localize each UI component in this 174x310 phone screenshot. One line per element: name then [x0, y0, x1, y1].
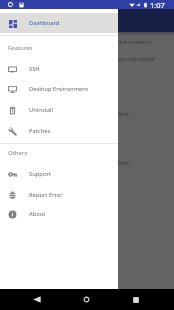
button[interactable]: SSH — [0, 59, 118, 79]
button[interactable]: Support — [0, 164, 118, 184]
button[interactable]: Desktop Environment — [0, 79, 118, 99]
staticText: SSH — [29, 65, 40, 73]
button[interactable]: Report Error — [0, 185, 118, 205]
staticText: Uninstall — [29, 106, 54, 114]
button[interactable]: Dashboard — [0, 13, 118, 33]
button[interactable]: Patches — [0, 121, 118, 141]
button[interactable]: About — [0, 204, 118, 224]
staticText: Welcome! This device screen is — [71, 38, 152, 46]
staticText: Dashboard — [29, 19, 60, 27]
button[interactable]: Back — [24, 289, 49, 310]
staticText: Check this first — [90, 110, 129, 118]
button[interactable]: Uninstall — [0, 100, 118, 120]
staticText: Features — [8, 44, 33, 52]
staticText: Desktop Environment — [29, 85, 89, 93]
staticText: used to check if you can install — [75, 55, 155, 63]
staticText: Others — [8, 149, 28, 157]
staticText: 1:07 — [150, 0, 165, 9]
staticText: Support — [29, 170, 51, 178]
button[interactable]: Recents — [123, 289, 148, 310]
button[interactable]: Home — [74, 289, 99, 310]
staticText: About — [29, 210, 46, 218]
staticText: Patches — [29, 127, 51, 135]
staticText: Then do this. Prof. — [82, 159, 130, 167]
staticText: Report Error — [29, 191, 63, 199]
